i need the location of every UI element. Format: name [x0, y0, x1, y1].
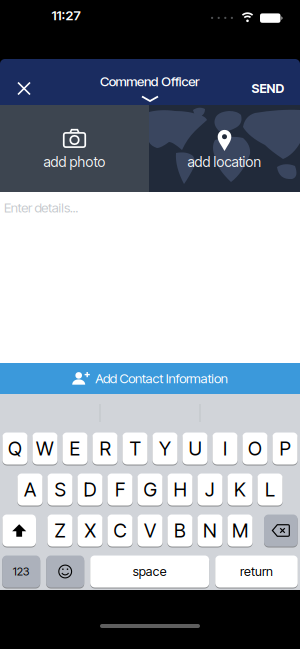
- staticText: 11:27: [51, 7, 80, 23]
- button[interactable]: O: [242, 432, 268, 465]
- button[interactable]: Z: [47, 514, 73, 547]
- button[interactable]: R: [92, 432, 118, 465]
- button[interactable]: add photo: [0, 105, 149, 192]
- button[interactable]: add location: [149, 105, 300, 192]
- staticText: add location: [187, 153, 261, 170]
- button[interactable]: SEND: [246, 70, 290, 106]
- button[interactable]: P: [272, 432, 298, 465]
- button[interactable]: D: [77, 473, 103, 506]
- staticText: SEND: [251, 81, 284, 96]
- staticText: H: [173, 478, 186, 501]
- staticText: C: [113, 519, 126, 542]
- button[interactable]: Shift: [2, 514, 36, 547]
- button[interactable]: 123: [2, 555, 40, 588]
- staticText: F: [115, 478, 125, 501]
- staticText: I: [223, 437, 227, 460]
- staticText: O: [248, 437, 262, 460]
- staticText: N: [203, 519, 217, 542]
- button[interactable]: Add Contact Information: [0, 363, 300, 394]
- button[interactable]: C: [107, 514, 133, 547]
- staticText: L: [265, 478, 275, 501]
- button[interactable]: Close: [6, 70, 42, 106]
- button[interactable]: J: [197, 473, 223, 506]
- staticText: J: [205, 478, 215, 501]
- staticText: U: [188, 437, 201, 460]
- button[interactable]: M: [227, 514, 253, 547]
- button[interactable]: return: [215, 555, 298, 588]
- button[interactable]: Y: [152, 432, 178, 465]
- staticText: return: [240, 564, 273, 579]
- staticText: P: [279, 437, 290, 460]
- staticText: A: [24, 478, 36, 501]
- staticText: K: [234, 478, 246, 501]
- staticText: Enter details...: [4, 199, 78, 216]
- staticText: Y: [159, 437, 171, 460]
- button[interactable]: I: [212, 432, 238, 465]
- staticText: G: [143, 478, 156, 501]
- button[interactable]: Emoji: [46, 555, 84, 588]
- staticText: D: [83, 478, 96, 501]
- staticText: Add Contact Information: [95, 370, 228, 386]
- button[interactable]: V: [137, 514, 163, 547]
- button[interactable]: G: [137, 473, 163, 506]
- button[interactable]: N: [197, 514, 223, 547]
- staticText: X: [84, 519, 95, 542]
- button[interactable]: K: [227, 473, 253, 506]
- staticText: T: [129, 437, 140, 460]
- button[interactable]: E: [62, 432, 88, 465]
- button[interactable]: T: [122, 432, 148, 465]
- staticText: Commend Officer: [100, 73, 200, 89]
- button[interactable]: Delete: [264, 514, 298, 547]
- button[interactable]: U: [182, 432, 208, 465]
- staticText: S: [54, 478, 65, 501]
- button[interactable]: B: [167, 514, 193, 547]
- button[interactable]: X: [77, 514, 103, 547]
- button[interactable]: W: [32, 432, 58, 465]
- staticText: Z: [54, 519, 65, 542]
- staticText: Q: [8, 437, 22, 460]
- button[interactable]: Collapse: [136, 94, 164, 104]
- staticText: M: [232, 519, 248, 542]
- button[interactable]: H: [167, 473, 193, 506]
- button[interactable]: Q: [2, 432, 28, 465]
- staticText: V: [144, 519, 156, 542]
- staticText: B: [174, 519, 186, 542]
- staticText: W: [36, 437, 54, 460]
- button[interactable]: space: [90, 555, 209, 588]
- button[interactable]: S: [47, 473, 73, 506]
- button[interactable]: F: [107, 473, 133, 506]
- button[interactable]: L: [257, 473, 283, 506]
- button[interactable]: A: [17, 473, 43, 506]
- staticText: R: [99, 437, 110, 460]
- staticText: space: [133, 564, 167, 579]
- staticText: 123: [13, 565, 30, 578]
- staticText: add photo: [43, 153, 105, 170]
- staticText: E: [69, 437, 80, 460]
